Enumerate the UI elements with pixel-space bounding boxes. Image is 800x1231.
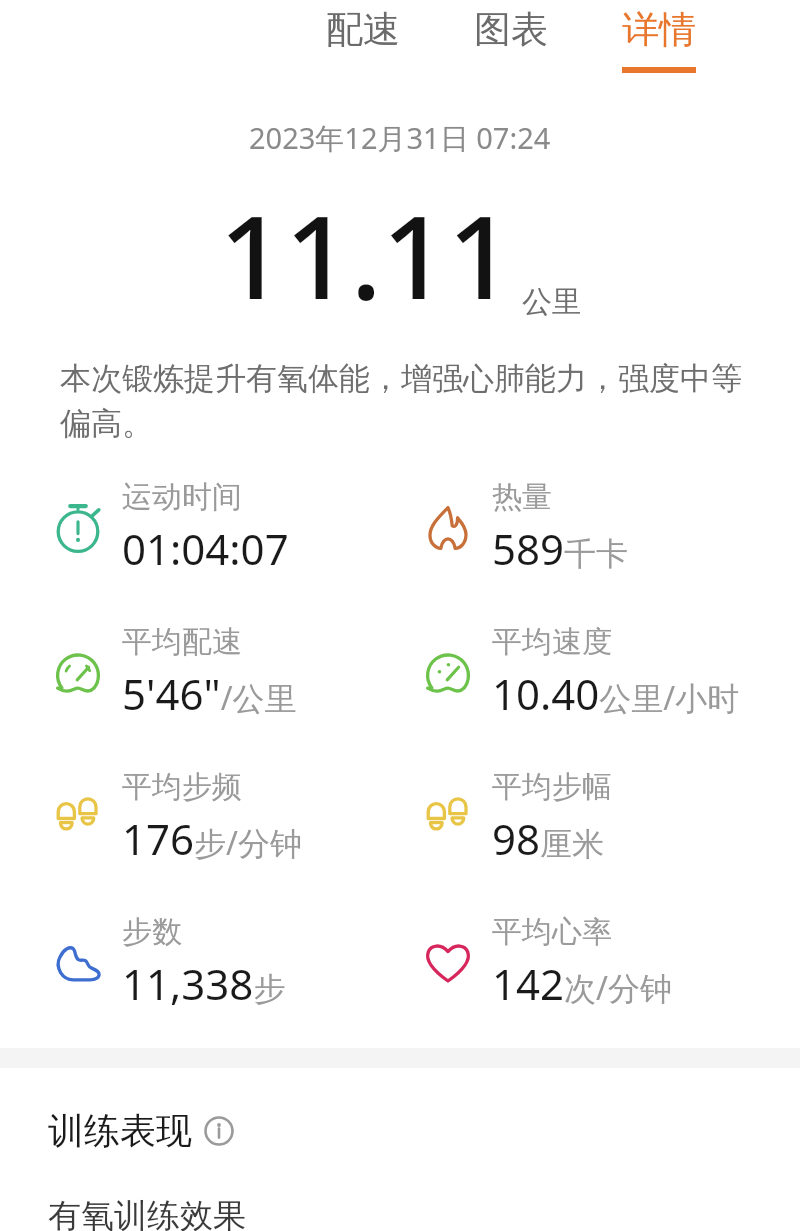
staticText: 142次/分钟 bbox=[492, 955, 672, 1012]
staticText: 平均配速 bbox=[122, 623, 242, 661]
staticText: 本次锻炼提升有氧体能，增强心肺能力，强度中等偏高。 bbox=[60, 359, 752, 444]
button[interactable]: 热量 bbox=[418, 478, 800, 577]
staticText: 平均速度 bbox=[492, 623, 612, 661]
staticText: 热量 bbox=[492, 478, 552, 516]
button[interactable]: 平均速度 bbox=[418, 623, 800, 722]
staticText: 5'46"/公里 bbox=[122, 665, 297, 722]
other: 运动时间 bbox=[48, 498, 108, 558]
staticText: 训练表现 bbox=[48, 1108, 192, 1153]
button[interactable]: 配速 bbox=[320, 0, 406, 79]
staticText: 589千卡 bbox=[492, 520, 629, 577]
other: 平均步幅 bbox=[418, 788, 478, 848]
button[interactable]: 平均步幅 bbox=[418, 768, 800, 867]
staticText: 公里 bbox=[522, 283, 582, 321]
other: 热量 bbox=[418, 498, 478, 558]
staticText: 平均步幅 bbox=[492, 768, 612, 806]
staticText: 图表 bbox=[474, 6, 548, 53]
button[interactable]: 图表 bbox=[468, 0, 554, 79]
other: 平均速度 bbox=[418, 643, 478, 703]
staticText: 01:04:07 bbox=[122, 520, 289, 577]
other: 信息 bbox=[204, 1116, 234, 1146]
staticText: 运动时间 bbox=[122, 478, 242, 516]
button[interactable]: 平均心率 bbox=[418, 913, 800, 1012]
other: 平均心率 bbox=[418, 933, 478, 993]
staticText: 10.40公里/小时 bbox=[492, 665, 740, 722]
staticText: 步数 bbox=[122, 913, 182, 951]
staticText: 98厘米 bbox=[492, 810, 605, 867]
button[interactable]: 详情 bbox=[616, 0, 702, 79]
staticText: 平均心率 bbox=[492, 913, 612, 951]
other: 步数 bbox=[48, 933, 108, 993]
staticText: 2023年12月31日 07:24 bbox=[249, 118, 551, 158]
staticText: 11.11 bbox=[219, 176, 514, 333]
staticText: 11,338步 bbox=[122, 955, 286, 1012]
button[interactable]: 平均配速 bbox=[48, 623, 400, 722]
other: 平均步频 bbox=[48, 788, 108, 848]
staticText: 有氧训练效果 bbox=[48, 1195, 246, 1231]
button[interactable]: 步数 bbox=[48, 913, 400, 1012]
staticText: 176步/分钟 bbox=[122, 810, 302, 867]
button[interactable]: 平均步频 bbox=[48, 768, 400, 867]
staticText: 平均步频 bbox=[122, 768, 242, 806]
button[interactable]: 训练表现 bbox=[48, 1108, 800, 1153]
button[interactable]: 运动时间 bbox=[48, 478, 400, 577]
other: 平均配速 bbox=[48, 643, 108, 703]
staticText: 详情 bbox=[622, 6, 696, 53]
staticText: 配速 bbox=[326, 6, 400, 53]
